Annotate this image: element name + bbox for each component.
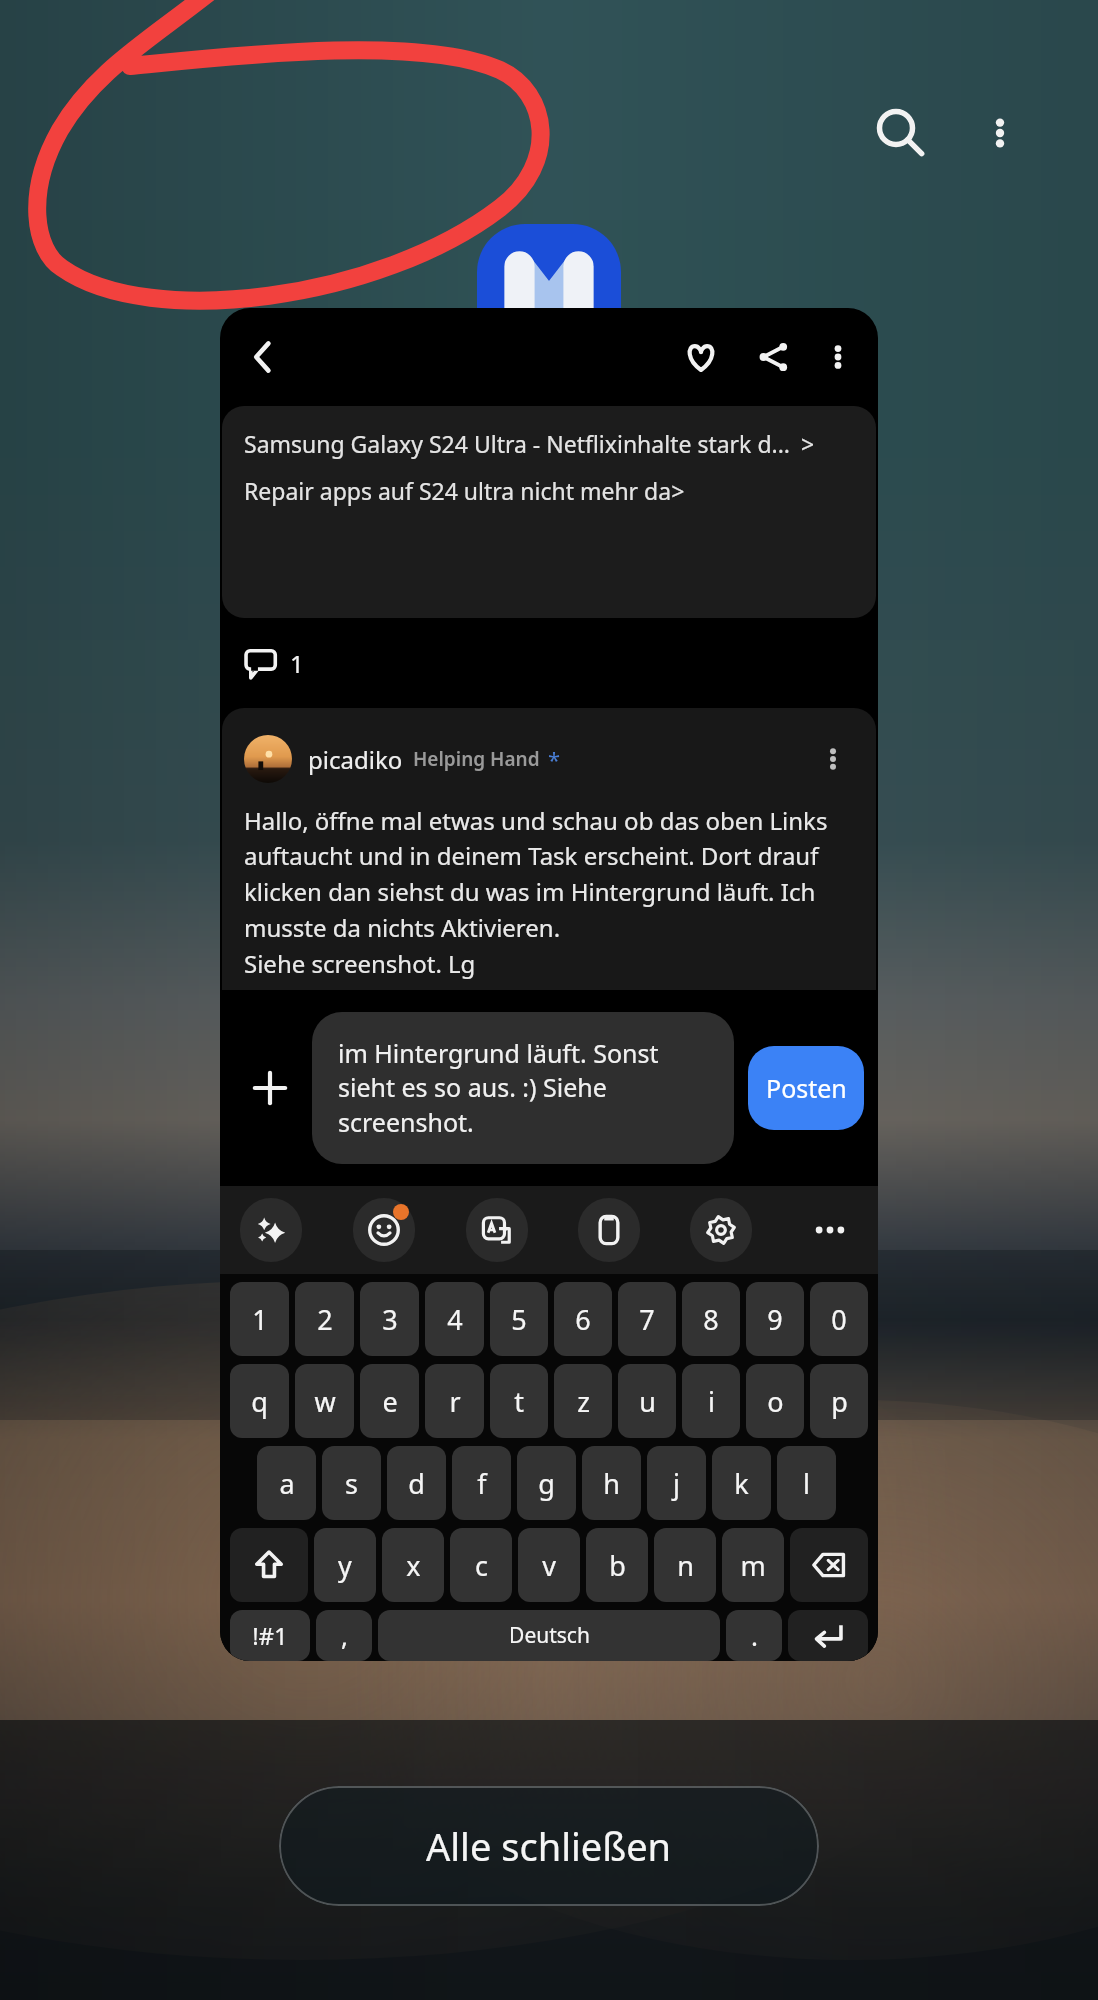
staticText: 8 (703, 1301, 719, 1338)
button[interactable]: j (647, 1446, 706, 1520)
staticText: l (803, 1465, 810, 1502)
button[interactable]: !#1 (230, 1610, 310, 1661)
staticText: Helping Hand (413, 746, 540, 772)
button[interactable]: im Hintergrund läuft. Sonst sieht es so … (312, 1012, 734, 1164)
staticText: Repair apps auf S24 ultra nicht mehr da> (244, 475, 685, 506)
staticText: w (314, 1383, 336, 1420)
button[interactable]: Add attachment (234, 1052, 306, 1124)
button[interactable]: 1 (230, 1282, 289, 1356)
button[interactable]: Shift (230, 1528, 308, 1602)
button[interactable]: Deutsch (378, 1610, 720, 1661)
staticText: b (609, 1547, 626, 1584)
button[interactable]: y (314, 1528, 376, 1602)
staticText: k (734, 1465, 749, 1502)
button[interactable]: 7 (618, 1282, 676, 1356)
staticText: u (639, 1383, 656, 1420)
button[interactable]: t (490, 1364, 548, 1438)
staticText: Posten (766, 1071, 847, 1105)
button[interactable]: l (777, 1446, 836, 1520)
button[interactable]: u (618, 1364, 676, 1438)
staticText: 3 (382, 1301, 398, 1338)
button[interactable]: More (802, 1202, 858, 1258)
staticText: 0 (831, 1301, 847, 1338)
button[interactable]: Clipboard (578, 1198, 640, 1262)
button[interactable]: Post options (806, 732, 860, 786)
staticText: e (382, 1383, 398, 1420)
button[interactable]: Enter (788, 1610, 868, 1661)
button[interactable]: 8 (682, 1282, 740, 1356)
staticText: Hallo, öffne mal etwas und schau ob das … (244, 804, 860, 980)
button[interactable]: w (295, 1364, 354, 1438)
staticText: r (449, 1383, 461, 1420)
staticText: Deutsch (509, 1621, 590, 1650)
staticText: * (548, 744, 561, 774)
staticText: g (538, 1465, 555, 1502)
button[interactable]: Like (668, 324, 734, 390)
button[interactable]: 2 (295, 1282, 354, 1356)
button[interactable]: 1 (220, 618, 878, 708)
button[interactable]: 4 (425, 1282, 484, 1356)
staticText: f (477, 1465, 487, 1502)
staticText: 6 (575, 1301, 591, 1338)
button[interactable]: b (586, 1528, 648, 1602)
staticText: !#1 (252, 1619, 288, 1652)
button[interactable]: Emoji (353, 1198, 415, 1262)
button[interactable]: 6 (554, 1282, 612, 1356)
button[interactable]: Translate (466, 1198, 528, 1262)
button[interactable]: e (360, 1364, 419, 1438)
staticText: n (677, 1547, 694, 1584)
button[interactable]: c (450, 1528, 512, 1602)
button[interactable]: AI suggestions (240, 1198, 302, 1262)
button[interactable]: , (316, 1610, 372, 1661)
button[interactable]: h (582, 1446, 641, 1520)
button[interactable]: Samsung Members (477, 224, 621, 368)
staticText: y (338, 1547, 352, 1584)
staticText: , (341, 1618, 348, 1653)
button[interactable]: d (387, 1446, 446, 1520)
button[interactable]: . (726, 1610, 782, 1661)
button[interactable]: x (382, 1528, 444, 1602)
button[interactable]: f (452, 1446, 511, 1520)
button[interactable]: i (682, 1364, 740, 1438)
button[interactable]: s (322, 1446, 381, 1520)
staticText: 1 (252, 1301, 268, 1338)
button[interactable]: a (257, 1446, 316, 1520)
button[interactable]: picadiko (222, 708, 876, 990)
button[interactable]: Back (220, 308, 878, 1661)
staticText: t (514, 1383, 524, 1420)
button[interactable]: More options (808, 327, 868, 387)
button[interactable]: Alle schließen (279, 1786, 819, 1906)
staticText: > (801, 428, 815, 459)
staticText: picadiko (308, 743, 403, 776)
button[interactable]: m (722, 1528, 784, 1602)
button[interactable]: k (712, 1446, 771, 1520)
button[interactable]: Samsung Galaxy S24 Ultra - Netflixinhalt… (222, 406, 876, 618)
button[interactable]: Backspace (790, 1528, 868, 1602)
button[interactable]: Share (740, 324, 806, 390)
staticText: d (408, 1465, 425, 1502)
button[interactable]: Posten (748, 1046, 864, 1130)
button[interactable]: Keyboard settings (690, 1198, 752, 1262)
staticText: im Hintergrund läuft. Sonst sieht es so … (338, 1036, 716, 1140)
button[interactable]: Search (855, 88, 945, 178)
staticText: 1 (290, 647, 304, 680)
button[interactable]: n (654, 1528, 716, 1602)
button[interactable]: Back (228, 322, 298, 392)
button[interactable]: r (425, 1364, 484, 1438)
button[interactable]: 5 (490, 1282, 548, 1356)
button[interactable]: p (810, 1364, 868, 1438)
staticText: j (673, 1465, 680, 1502)
staticText: . (751, 1618, 758, 1653)
button[interactable]: 9 (746, 1282, 804, 1356)
staticText: 5 (511, 1301, 527, 1338)
button[interactable]: z (554, 1364, 612, 1438)
button[interactable]: g (517, 1446, 576, 1520)
button[interactable]: v (518, 1528, 580, 1602)
staticText: i (708, 1383, 715, 1420)
button[interactable]: More options (955, 88, 1045, 178)
button[interactable]: 0 (810, 1282, 868, 1356)
staticText: 9 (767, 1301, 783, 1338)
button[interactable]: o (746, 1364, 804, 1438)
button[interactable]: q (230, 1364, 289, 1438)
button[interactable]: 3 (360, 1282, 419, 1356)
